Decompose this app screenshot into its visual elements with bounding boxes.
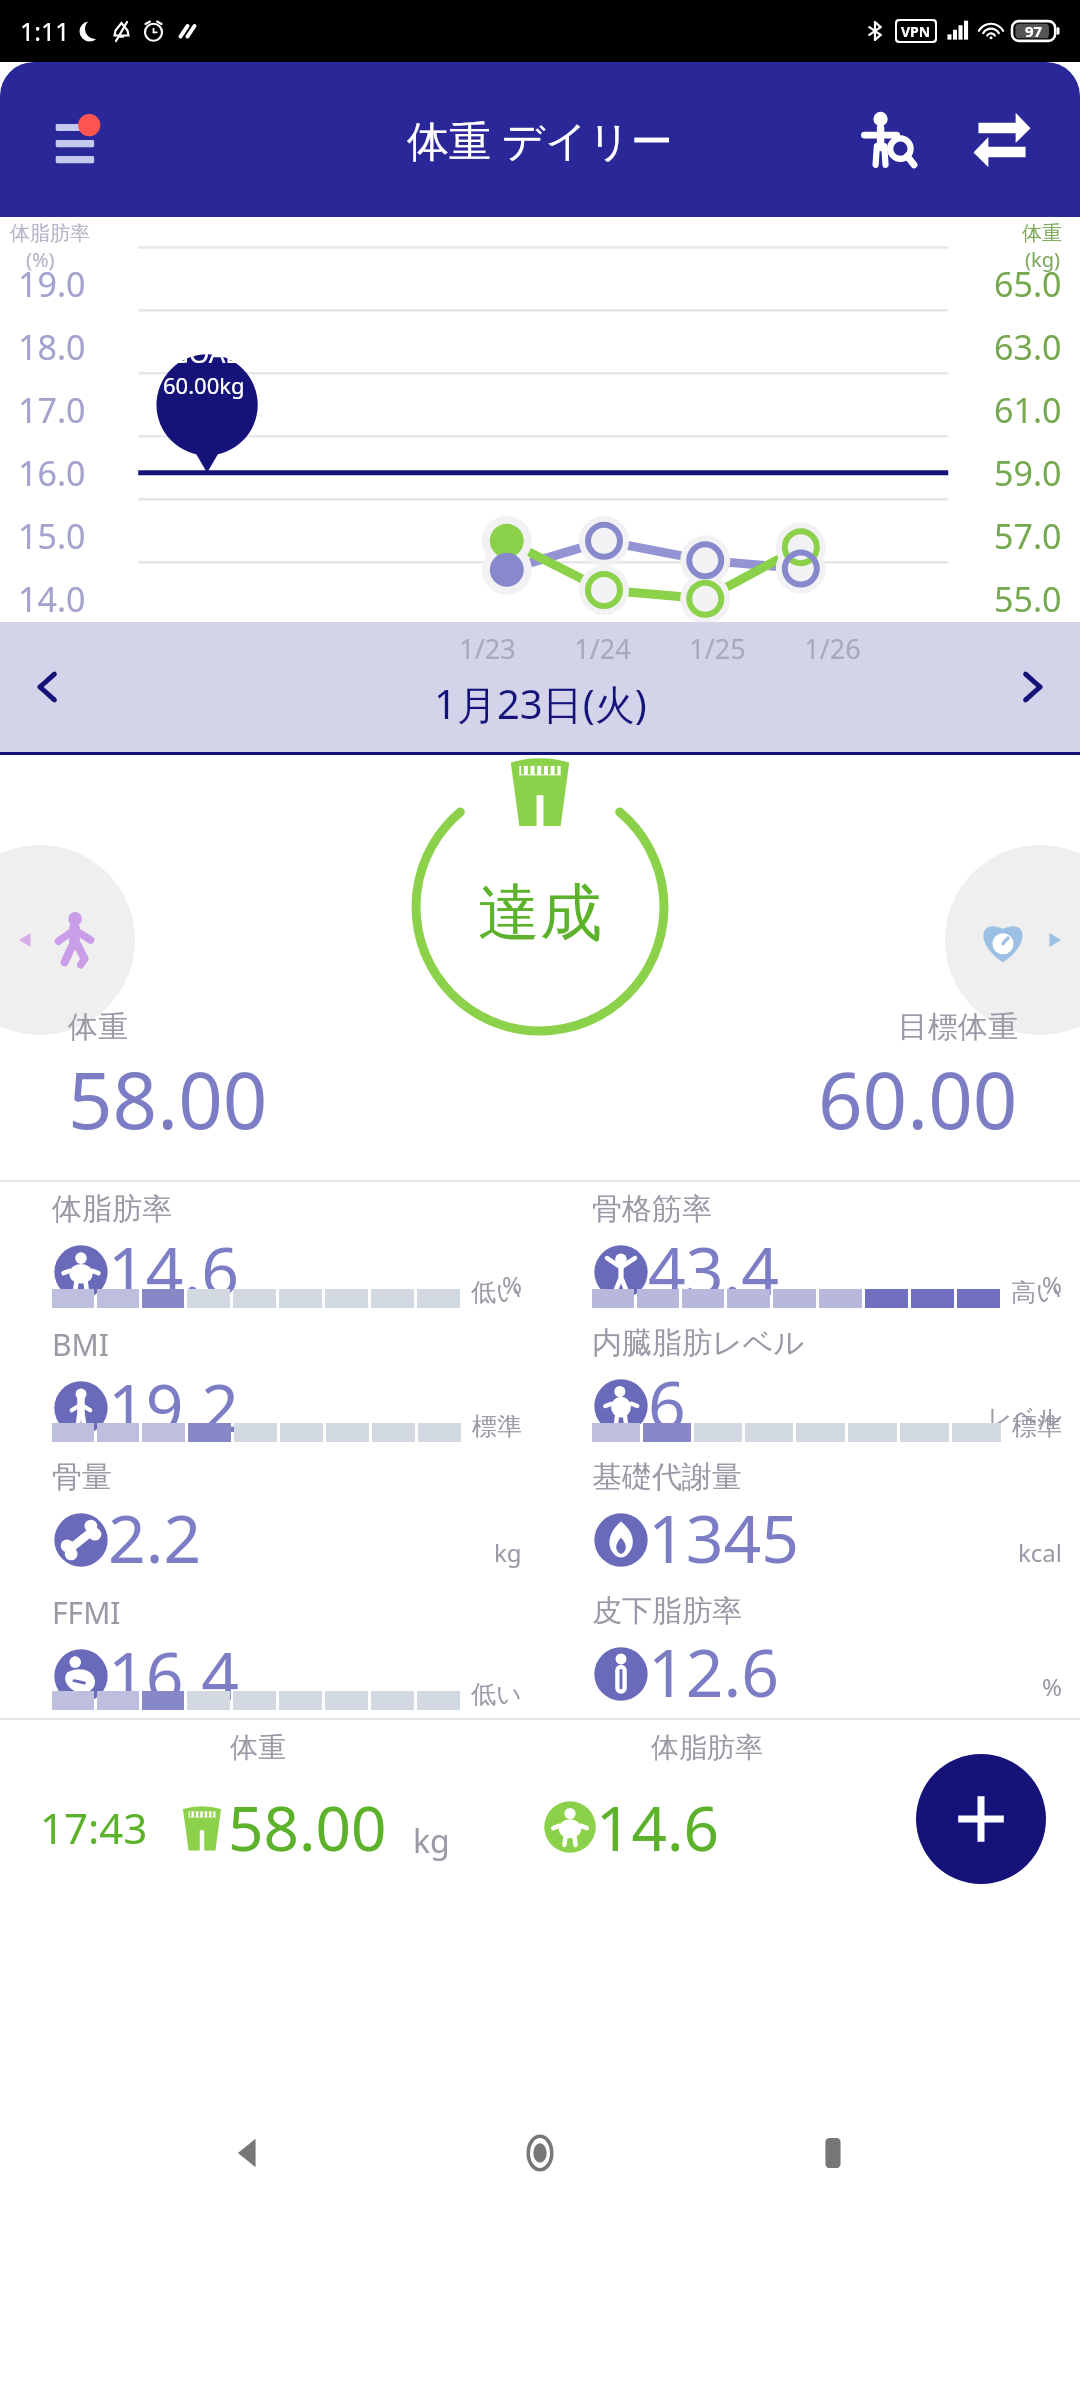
staticText: 55.0 [994, 576, 1062, 622]
staticText: 1/23 [430, 630, 545, 667]
button[interactable]: 骨格筋率 [540, 1182, 1080, 1316]
staticText: VPN [901, 22, 931, 41]
staticText: 17.0 [18, 387, 86, 433]
button[interactable]: Next screen: Heart [945, 845, 1080, 1035]
button[interactable]: Sync [954, 92, 1050, 188]
staticText: 59.0 [994, 450, 1062, 496]
button[interactable]: Add record [916, 1754, 1046, 1884]
staticText: 14.0 [18, 576, 86, 622]
staticText: 6 [648, 1358, 686, 1446]
button[interactable]: Next day [992, 647, 1072, 727]
button[interactable]: 内臓脂肪レベル [540, 1316, 1080, 1450]
staticText: 低い [471, 1277, 522, 1308]
staticText: 高い [1011, 1277, 1062, 1308]
staticText: 17:43 [40, 1799, 148, 1856]
staticText: 達成 [478, 874, 602, 952]
staticText: kg [494, 1536, 522, 1569]
staticText: % [1042, 1268, 1062, 1301]
staticText: 体重 [1022, 221, 1062, 246]
staticText: 65.0 [994, 261, 1062, 307]
button[interactable]: 骨量 [0, 1450, 540, 1584]
staticText: 標準 [1012, 1411, 1062, 1442]
button[interactable]: Menu [40, 97, 126, 183]
staticText: 内臓脂肪レベル [592, 1324, 805, 1362]
staticText: BMI [52, 1324, 109, 1365]
staticText: 60.00kg [163, 370, 245, 400]
staticText: 12.6 [648, 1626, 779, 1714]
staticText: (%) [26, 246, 55, 273]
staticText: 目標体重 [898, 1008, 1018, 1046]
staticText: FFMI [52, 1592, 121, 1633]
staticText: 体重 [68, 1008, 128, 1046]
button[interactable]: Home [495, 2108, 585, 2198]
staticText: 19.0 [18, 261, 86, 307]
staticText: 58.00 [68, 1046, 268, 1152]
button[interactable]: FFMI [0, 1584, 540, 1718]
staticText: 体重 [230, 1730, 286, 1765]
staticText: 1月23日(火) [434, 676, 647, 731]
staticText: 低い [471, 1679, 522, 1710]
staticText: 60.00 [818, 1046, 1018, 1152]
button[interactable]: 体脂肪率 [0, 1182, 540, 1316]
staticText: 61.0 [994, 387, 1062, 433]
button[interactable]: Recents [788, 2108, 878, 2198]
staticText: kg [413, 1819, 450, 1863]
staticText: GOAL [170, 335, 239, 370]
staticText: 43.4 [648, 1224, 779, 1312]
button[interactable]: BMI [0, 1316, 540, 1450]
staticText: 体脂肪率 [52, 1190, 172, 1228]
staticText: 15.0 [18, 513, 86, 559]
staticText: 1345 [648, 1492, 800, 1580]
staticText: 2.2 [108, 1492, 202, 1580]
staticText: 体脂肪率 [651, 1730, 763, 1765]
button[interactable]: 基礎代謝量 [540, 1450, 1080, 1584]
staticText: % [1042, 1670, 1062, 1703]
staticText: (kg) [1025, 246, 1060, 273]
button[interactable]: 皮下脂肪率 [540, 1584, 1080, 1718]
staticText: 骨格筋率 [592, 1190, 712, 1228]
staticText: 19.2 [108, 1361, 239, 1446]
staticText: 基礎代謝量 [592, 1458, 742, 1496]
staticText: 1/25 [660, 630, 775, 667]
staticText: 1/24 [545, 630, 660, 667]
staticText: 18.0 [18, 324, 86, 370]
staticText: 体脂肪率 [10, 221, 90, 246]
staticText: % [502, 1268, 522, 1301]
button[interactable]: Previous day [8, 647, 88, 727]
button[interactable]: Back [203, 2108, 293, 2198]
staticText: 1/26 [775, 630, 890, 667]
button[interactable]: Previous screen: Activity [0, 845, 135, 1035]
staticText: 骨量 [52, 1458, 112, 1496]
staticText: 16.4 [108, 1629, 239, 1714]
staticText: 1:11 [20, 14, 70, 48]
staticText: 14.6 [596, 1785, 720, 1869]
staticText: 63.0 [994, 324, 1062, 370]
staticText: 97 [1025, 21, 1043, 41]
staticText: レベル [988, 1402, 1062, 1432]
staticText: 皮下脂肪率 [592, 1592, 742, 1630]
staticText: 57.0 [994, 513, 1062, 559]
staticText: 16.0 [18, 450, 86, 496]
staticText: kcal [1018, 1536, 1062, 1569]
button[interactable]: Body search [840, 92, 936, 188]
staticText: 体重 デイリー [407, 111, 673, 168]
staticText: 58.00 [228, 1785, 387, 1869]
staticText: 14.6 [108, 1224, 239, 1312]
staticText: 標準 [472, 1411, 522, 1442]
